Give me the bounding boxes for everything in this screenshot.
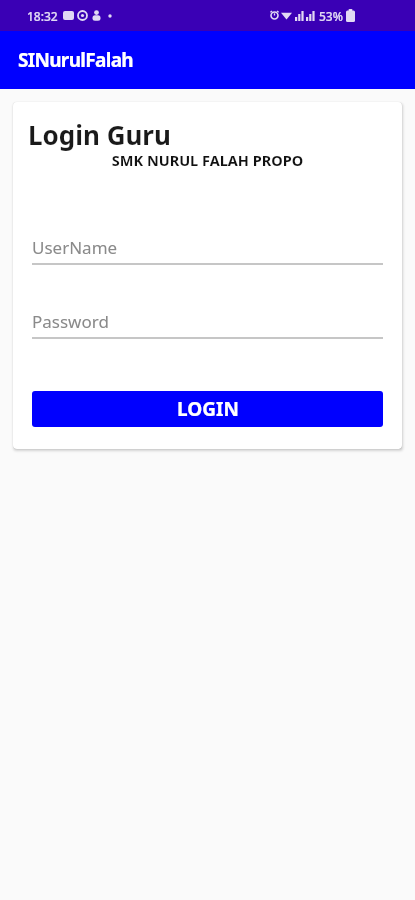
staticText: SINurulFalah bbox=[18, 47, 133, 73]
button[interactable]: LOGIN bbox=[32, 391, 383, 427]
staticText: LOGIN bbox=[177, 396, 239, 422]
button[interactable]: Password bbox=[32, 310, 383, 339]
staticText: Login Guru bbox=[28, 117, 171, 152]
staticText: UserName bbox=[32, 236, 118, 259]
button[interactable]: UserName bbox=[32, 236, 383, 265]
staticText: SMK NURUL FALAH PROPO bbox=[32, 150, 383, 170]
staticText: 18:32 bbox=[27, 8, 58, 24]
staticText: 53% bbox=[319, 8, 343, 24]
staticText: Password bbox=[32, 310, 109, 333]
